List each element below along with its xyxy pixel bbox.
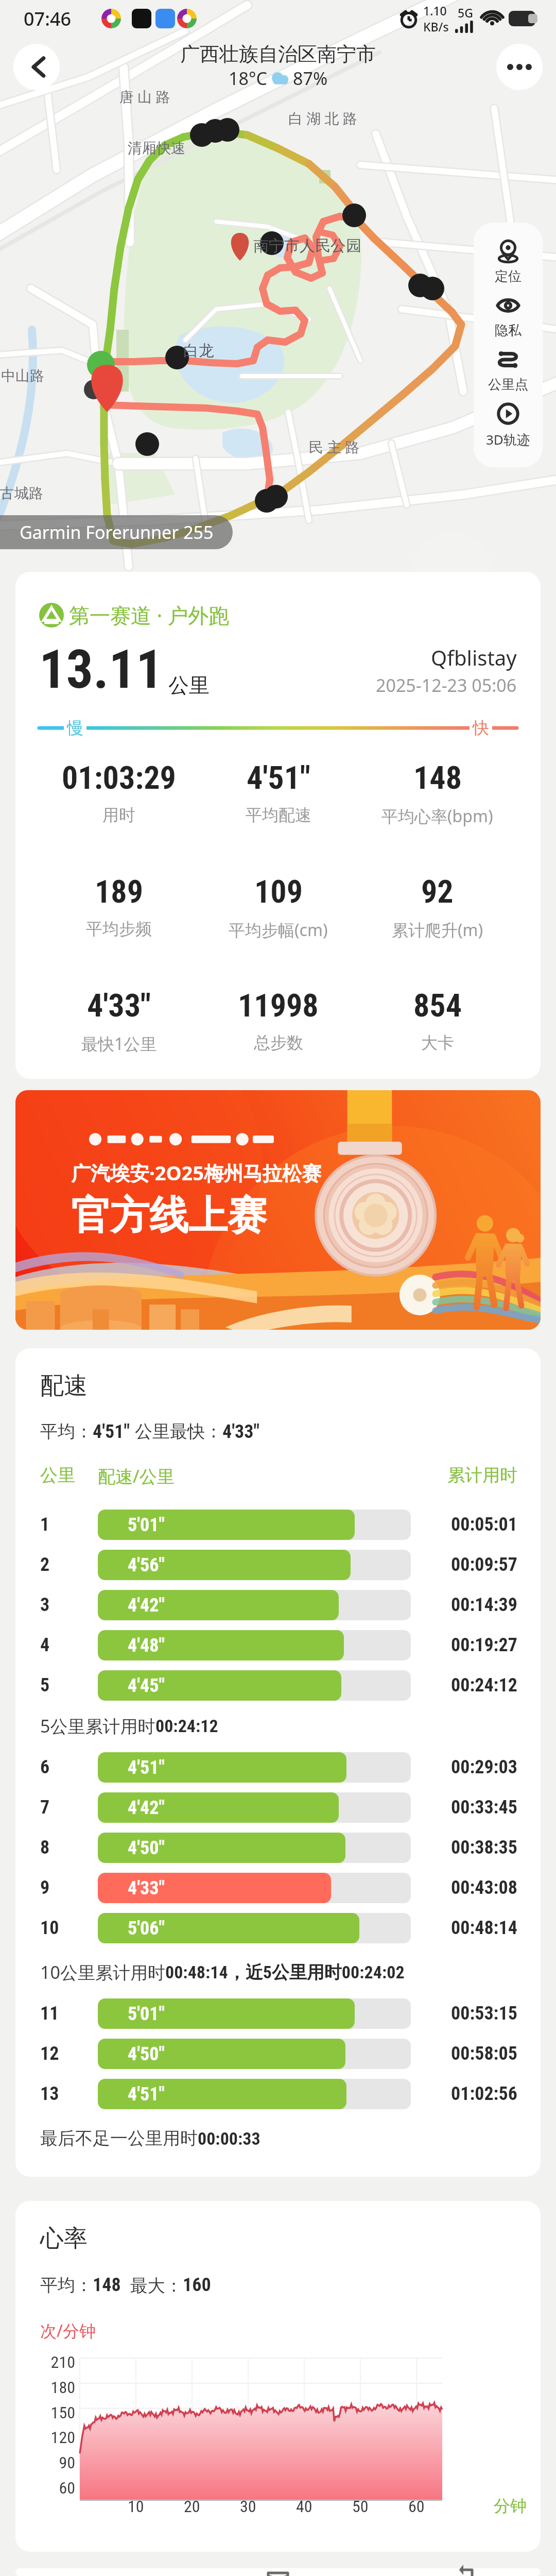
staticText: 配速 <box>40 1371 88 1401</box>
staticText: 平均： <box>40 2274 93 2296</box>
button[interactable]: 隐私 <box>474 292 543 346</box>
button[interactable]: More options <box>496 44 543 90</box>
staticText: 最后不足一公里用时 <box>40 2127 198 2149</box>
staticText: 白 湖 北 路 <box>288 108 357 128</box>
staticText: 4'33" <box>222 1421 259 1443</box>
staticText: 00:33:45 <box>451 1797 517 1818</box>
staticText: 2025-12-23 05:06 <box>376 673 517 697</box>
staticText: 慢 <box>67 718 83 738</box>
staticText: 4'51" <box>128 1757 165 1778</box>
staticText: 109 <box>254 873 303 910</box>
staticText: 4'33" <box>87 987 151 1024</box>
staticText: 00:38:35 <box>451 1837 517 1858</box>
staticText: 20 <box>184 2497 200 2516</box>
staticText: 广汽埃安·2O25梅州马拉松赛 <box>71 1159 321 1186</box>
staticText: 60 <box>15 2478 75 2498</box>
staticText: 00:48:14，近5公里用时00:24:02 <box>165 1961 405 1984</box>
staticText: 平均步幅(cm) <box>229 919 328 941</box>
staticText: 4'51" <box>128 2083 165 2105</box>
staticText: 5'01" <box>128 2003 165 2025</box>
staticText: 5'01" <box>128 1514 165 1536</box>
staticText: 5 <box>40 1674 98 1696</box>
button[interactable]: 公里点 <box>474 346 543 400</box>
staticText: 00:43:08 <box>451 1877 517 1899</box>
staticText: 配速/公里 <box>98 1464 175 1488</box>
staticText: 总步数 <box>254 1032 303 1053</box>
staticText: 平均配速 <box>246 805 311 825</box>
staticText: 5公里累计用时 <box>40 1714 155 1738</box>
staticText: 40 <box>296 2497 312 2516</box>
staticText: 180 <box>15 2378 75 2397</box>
staticText: 4'51" <box>93 1421 130 1443</box>
button[interactable]: 定位 <box>474 238 543 292</box>
button[interactable]: Back <box>13 44 60 90</box>
staticText: 30 <box>240 2497 256 2516</box>
staticText: 00:00:33 <box>198 2128 260 2149</box>
staticText: 平均： <box>40 1420 93 1443</box>
staticText: 5'06" <box>128 1918 165 1939</box>
staticText: 平均步频 <box>86 919 152 939</box>
staticText: 白龙 <box>183 341 214 361</box>
staticText: 00:09:57 <box>451 1554 517 1575</box>
staticText: 00:05:01 <box>451 1514 517 1535</box>
staticText: 10 <box>128 2497 144 2516</box>
staticText: 4'42" <box>128 1595 165 1616</box>
staticText: 11998 <box>238 987 319 1024</box>
staticText: 第一赛道 · 户外跑 <box>69 601 230 629</box>
staticText: 90 <box>15 2453 75 2472</box>
staticText: KB/s <box>423 19 449 35</box>
staticText: 87% <box>293 66 328 90</box>
staticText: 50 <box>352 2497 369 2516</box>
staticText: 分钟 <box>494 2496 527 2516</box>
staticText: 18°C <box>229 66 267 90</box>
staticText: 854 <box>413 987 462 1024</box>
button[interactable]: 3D轨迹 <box>474 400 543 456</box>
staticText: 12 <box>40 2043 98 2064</box>
staticText: 150 <box>15 2403 75 2422</box>
staticText: 唐 山 路 <box>119 87 170 106</box>
staticText: 01:03:29 <box>62 759 176 796</box>
staticText: 11 <box>40 2003 98 2024</box>
staticText: 4'51" <box>247 759 310 796</box>
staticText: 00:24:12 <box>155 1716 218 1736</box>
staticText: 92 <box>421 873 454 910</box>
staticText: 公里 <box>40 1464 98 1486</box>
staticText: 00:24:12 <box>451 1674 517 1696</box>
staticText: 官方线上赛 <box>71 1191 267 1241</box>
staticText: Qfblistay <box>431 643 517 671</box>
staticText: 2 <box>40 1554 98 1575</box>
staticText: 00:29:03 <box>451 1756 517 1778</box>
staticText: 心率 <box>40 2224 88 2253</box>
button[interactable]: 广汽埃安·2O25梅州马拉松赛 <box>15 1090 541 1330</box>
staticText: 公里 <box>168 672 210 698</box>
staticText: 00:58:05 <box>451 2043 517 2064</box>
staticText: 南宁市人民公园 <box>253 236 361 256</box>
staticText: 次/分钟 <box>40 2319 96 2342</box>
staticText: 9 <box>40 1877 98 1899</box>
staticText: 1 <box>40 1514 98 1535</box>
staticText: 4'50" <box>128 1837 165 1859</box>
staticText: 4'50" <box>128 2043 165 2065</box>
staticText: 10公里累计用时 <box>40 1960 165 1984</box>
staticText: 60 <box>408 2497 425 2516</box>
staticText: 189 <box>95 873 143 910</box>
staticText: 07:46 <box>24 6 72 31</box>
staticText: 10 <box>40 1917 98 1939</box>
staticText: 00:19:27 <box>451 1634 517 1656</box>
staticText: 210 <box>15 2352 75 2372</box>
staticText: 7 <box>40 1797 98 1818</box>
staticText: 13.11 <box>39 638 163 701</box>
staticText: 3D轨迹 <box>486 430 530 449</box>
staticText: 1.10 <box>423 3 447 19</box>
staticText: 定位 <box>495 268 522 285</box>
staticText: 00:48:14 <box>451 1917 517 1939</box>
staticText: 累计用时 <box>447 1464 517 1486</box>
staticText: 4'45" <box>128 1675 165 1697</box>
staticText: 公里点 <box>488 376 528 393</box>
staticText: 公里最快： <box>135 1420 222 1443</box>
staticText: 清厢快速 <box>128 139 185 157</box>
staticText: 4 <box>40 1634 98 1656</box>
staticText: 8 <box>40 1837 98 1858</box>
staticText: 160 <box>183 2274 211 2296</box>
staticText: 4'48" <box>128 1635 165 1656</box>
